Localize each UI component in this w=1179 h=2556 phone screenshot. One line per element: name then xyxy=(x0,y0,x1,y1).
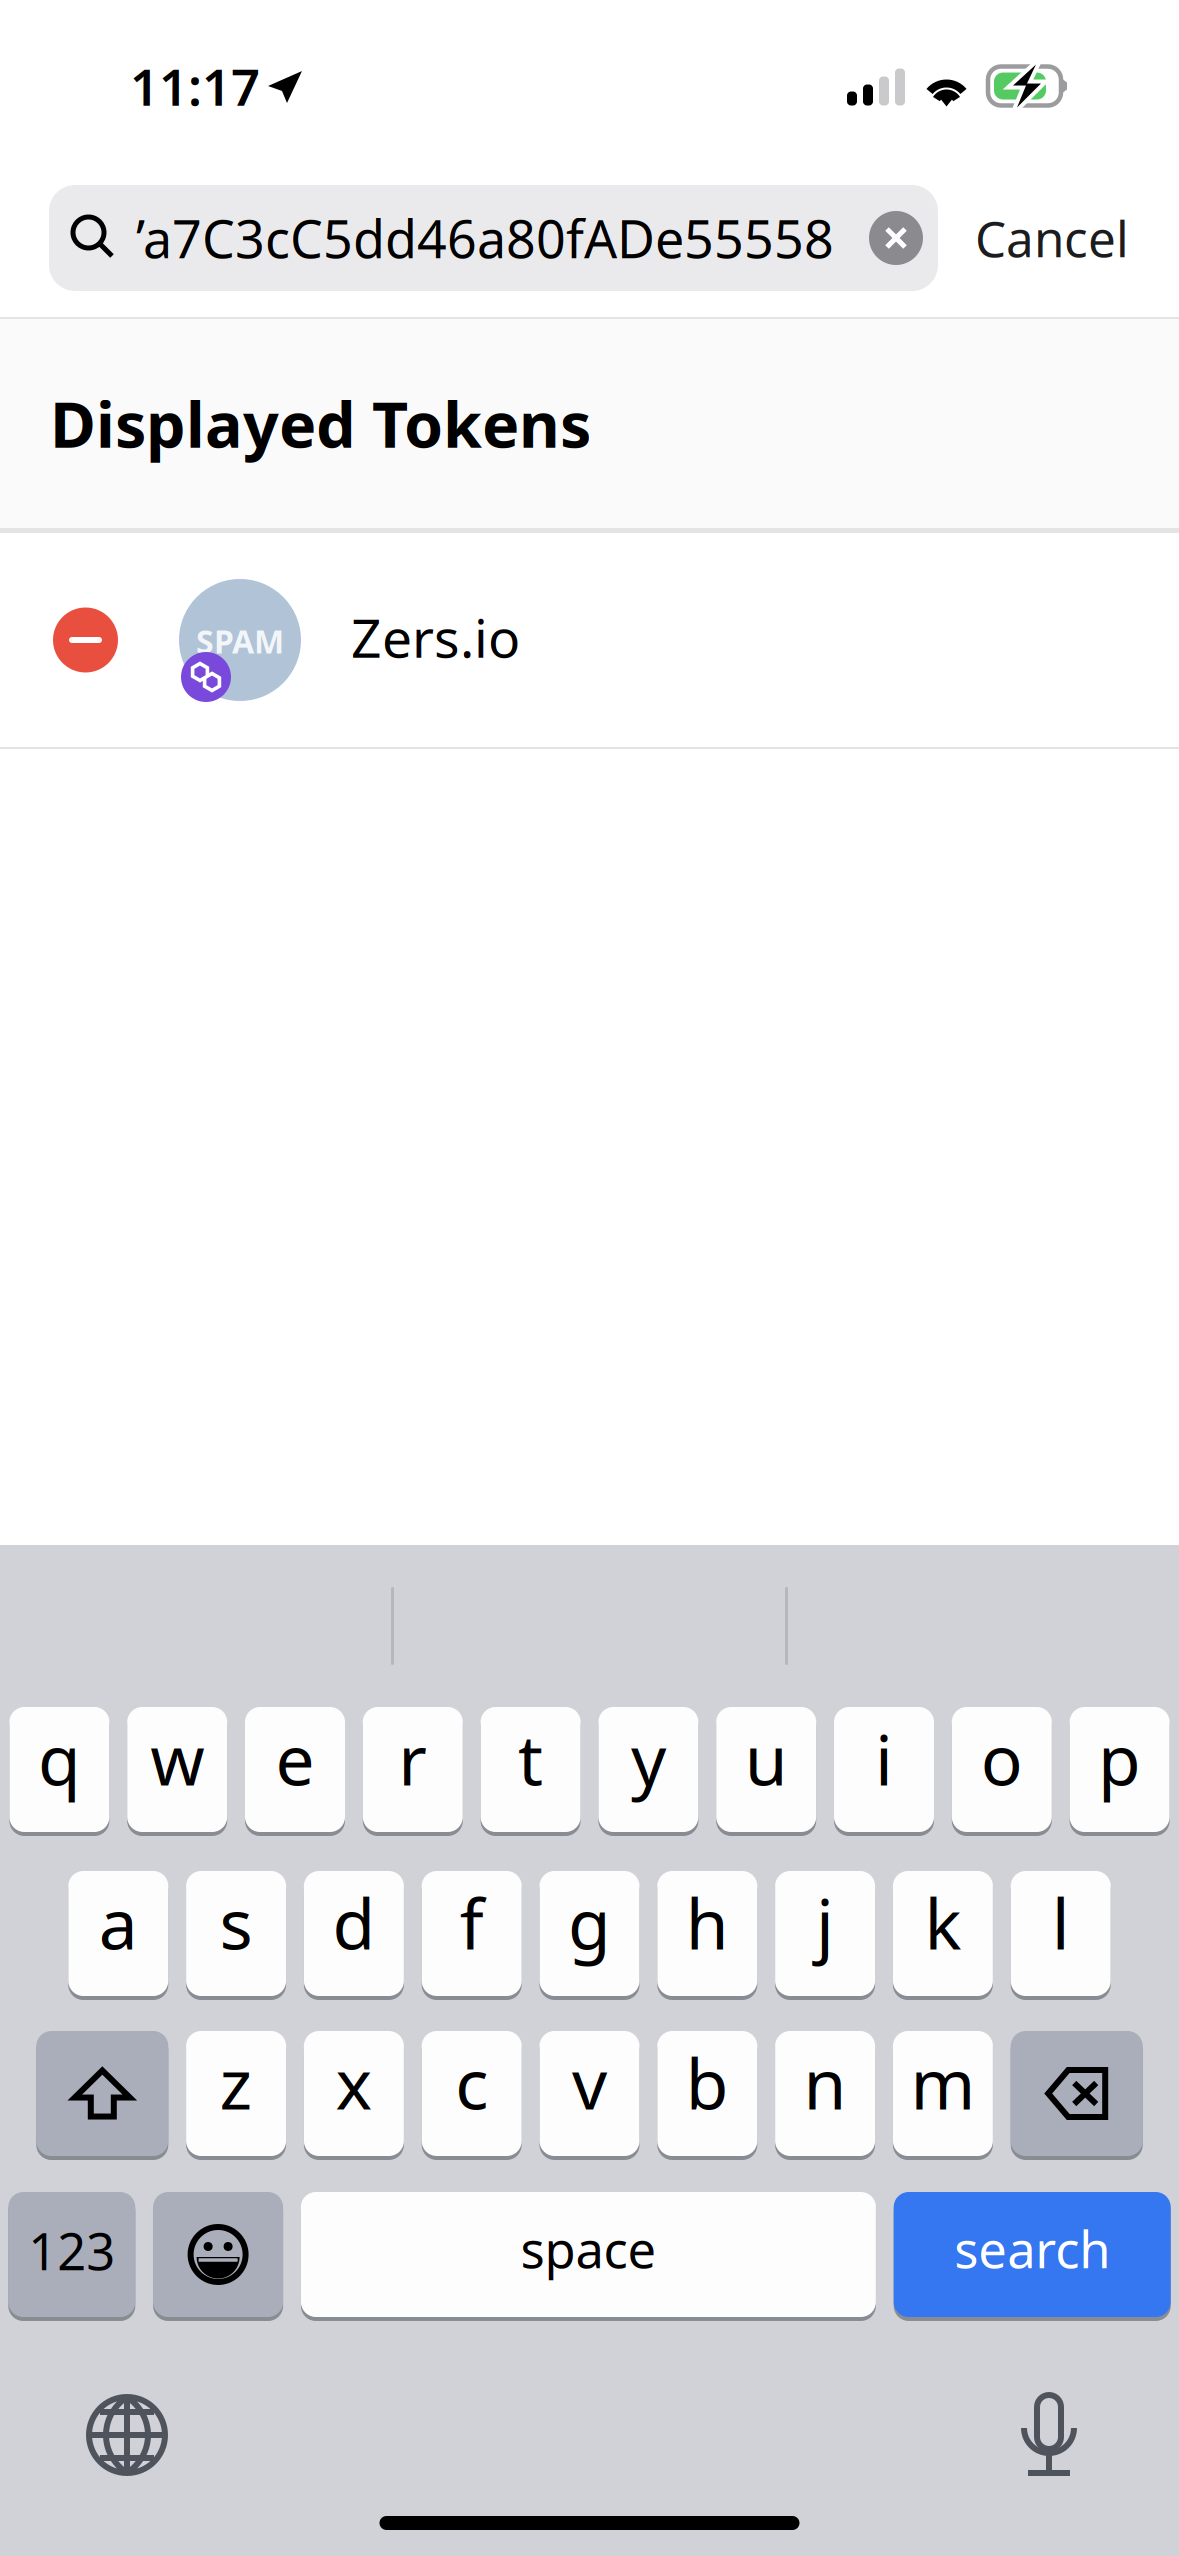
staticText: s xyxy=(220,1876,253,1969)
staticText: Cancel xyxy=(975,205,1129,271)
button[interactable]: o xyxy=(952,1707,1052,1832)
staticText: j xyxy=(816,1876,834,1969)
staticText: w xyxy=(150,1712,204,1805)
button[interactable]: x xyxy=(304,2031,404,2156)
staticText: p xyxy=(1098,1712,1141,1805)
button[interactable]: Cancel xyxy=(938,185,1150,291)
staticText: d xyxy=(332,1876,375,1969)
staticText: space xyxy=(520,2215,656,2282)
button[interactable]: g xyxy=(539,1871,639,1996)
staticText: k xyxy=(924,1876,961,1969)
button[interactable]: search xyxy=(894,2192,1171,2317)
staticText: x xyxy=(335,2036,372,2129)
staticText: ’a7C3cC5dd46a80fADe55558 xyxy=(136,203,834,273)
staticText: t xyxy=(518,1712,543,1805)
staticText: SPAM xyxy=(196,620,284,662)
button[interactable]: u xyxy=(716,1707,816,1832)
button[interactable]: h xyxy=(657,1871,757,1996)
button[interactable]: n xyxy=(775,2031,875,2156)
button[interactable]: j xyxy=(775,1871,875,1996)
staticText: 123 xyxy=(28,2217,115,2284)
staticText: o xyxy=(981,1712,1023,1805)
staticText: e xyxy=(275,1712,314,1805)
button[interactable]: v xyxy=(539,2031,639,2156)
staticText: h xyxy=(686,1876,729,1969)
staticText: y xyxy=(631,1712,666,1805)
button[interactable]: t xyxy=(481,1707,581,1832)
button[interactable]: s xyxy=(186,1871,286,1996)
button[interactable]: Clear text xyxy=(854,185,938,291)
button[interactable]: q xyxy=(9,1707,109,1832)
button[interactable]: Dictation xyxy=(1020,2392,1078,2478)
button[interactable]: w xyxy=(127,1707,227,1832)
button[interactable]: Delete xyxy=(1011,2031,1143,2156)
staticText: 11:17 xyxy=(130,52,260,120)
button[interactable]: r xyxy=(363,1707,463,1832)
button[interactable]: d xyxy=(304,1871,404,1996)
button[interactable]: k xyxy=(893,1871,993,1996)
staticText: b xyxy=(686,2036,729,2129)
button[interactable]: f xyxy=(422,1871,522,1996)
staticText: z xyxy=(220,2036,253,2129)
staticText: g xyxy=(568,1876,611,1969)
button[interactable]: SPAM xyxy=(0,533,1179,747)
button[interactable]: a xyxy=(68,1871,168,1996)
staticText: c xyxy=(455,2036,488,2129)
button[interactable]: Shift xyxy=(36,2031,168,2156)
button[interactable]: e xyxy=(245,1707,345,1832)
button[interactable]: Emoji xyxy=(153,2192,283,2317)
staticText: Displayed Tokens xyxy=(50,382,591,465)
staticText: f xyxy=(460,1876,484,1969)
staticText: Zers.io xyxy=(351,602,520,672)
staticText: r xyxy=(398,1712,427,1805)
staticText: a xyxy=(99,1876,138,1969)
staticText: m xyxy=(910,2036,975,2129)
staticText: v xyxy=(572,2036,607,2129)
button[interactable]: z xyxy=(186,2031,286,2156)
button[interactable]: m xyxy=(893,2031,993,2156)
button[interactable]: i xyxy=(834,1707,934,1832)
button[interactable]: 123 xyxy=(8,2192,135,2317)
button[interactable]: p xyxy=(1070,1707,1170,1832)
button[interactable]: Next keyboard xyxy=(86,2393,168,2477)
button[interactable]: space xyxy=(301,2192,876,2317)
button[interactable]: l xyxy=(1011,1871,1111,1996)
button[interactable]: y xyxy=(598,1707,698,1832)
staticText: n xyxy=(804,2036,847,2129)
staticText: q xyxy=(38,1712,81,1805)
button[interactable]: b xyxy=(657,2031,757,2156)
staticText: i xyxy=(875,1712,893,1805)
staticText: u xyxy=(745,1712,788,1805)
button[interactable]: c xyxy=(422,2031,522,2156)
staticText: l xyxy=(1052,1876,1070,1969)
staticText: search xyxy=(954,2215,1110,2282)
